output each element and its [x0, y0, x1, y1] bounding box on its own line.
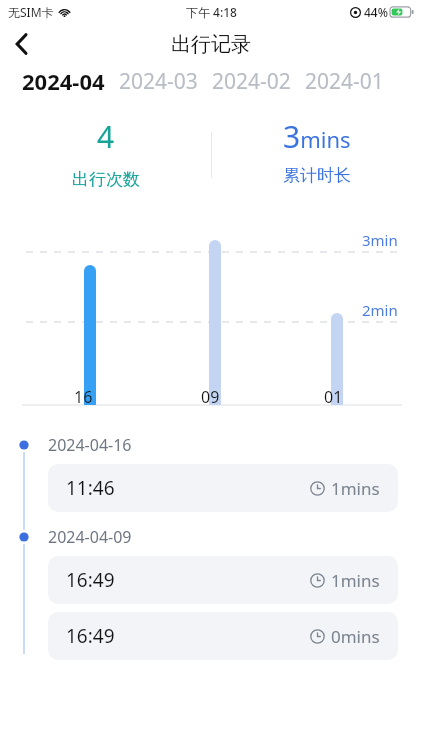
staticText: 2min	[362, 300, 398, 320]
button[interactable]: 2024-04	[22, 66, 105, 96]
staticText: 4	[97, 116, 115, 157]
staticText: 无SIM卡	[8, 4, 54, 20]
button[interactable]: 2024-03	[119, 67, 198, 96]
button[interactable]: 16:49	[48, 556, 398, 604]
button[interactable]: 2024-02	[212, 67, 291, 96]
staticText: 3mins	[283, 116, 351, 157]
staticText: 16:49	[66, 623, 115, 649]
staticText: 0mins	[331, 625, 380, 648]
staticText: 09	[201, 386, 220, 408]
staticText: 2024-01	[305, 67, 384, 96]
staticText: 16	[74, 386, 93, 408]
staticText: 累计时长	[283, 165, 351, 186]
staticText: 2024-04-16	[48, 434, 132, 456]
staticText: 2024-03	[119, 67, 198, 96]
staticText: 2024-04	[22, 66, 105, 96]
staticText: 44%	[364, 4, 388, 20]
staticText: 1mins	[331, 477, 380, 500]
button[interactable]: 2024-01	[305, 67, 384, 96]
staticText: 1mins	[331, 569, 380, 592]
button[interactable]: 16:49	[48, 612, 398, 660]
staticText: 3min	[362, 230, 398, 250]
staticText: 出行记录	[171, 32, 251, 57]
staticText: 01	[324, 386, 343, 408]
staticText: 下午 4:18	[186, 4, 237, 20]
button[interactable]: Back	[0, 24, 44, 64]
button[interactable]: 4	[0, 116, 211, 190]
staticText: 出行次数	[72, 169, 140, 190]
button[interactable]: 3mins	[211, 116, 422, 186]
button[interactable]: 11:46	[48, 464, 398, 512]
staticText: 16:49	[66, 567, 115, 593]
staticText: 2024-04-09	[48, 526, 132, 548]
staticText: 11:46	[66, 475, 115, 501]
staticText: 2024-02	[212, 67, 291, 96]
